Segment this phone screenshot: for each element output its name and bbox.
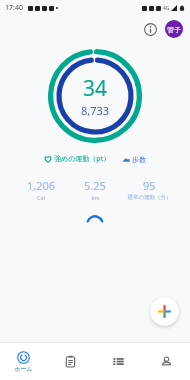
button[interactable]: 歩数 [120, 153, 148, 166]
button[interactable]: 1,206 [14, 178, 68, 201]
staticText: 8,733 [81, 103, 110, 118]
staticText: 4G [163, 5, 170, 12]
button[interactable]: Tab [142, 343, 190, 380]
staticText: 5.25 [84, 178, 106, 193]
button[interactable]: Account [165, 20, 183, 38]
button[interactable]: Add [150, 297, 179, 326]
staticText: ホーム [14, 365, 33, 373]
button[interactable]: ホーム [0, 343, 47, 380]
button[interactable]: Info [139, 18, 161, 40]
staticText: 歩数 [132, 155, 146, 164]
staticText: 管子 [167, 25, 181, 34]
staticText: km [91, 194, 100, 201]
button[interactable]: 強めの運動（pt） [42, 152, 113, 166]
staticText: 通常の運動（分） [127, 194, 172, 201]
staticText: 17:40 [5, 3, 23, 13]
button[interactable]: 95 [122, 178, 176, 201]
staticText: 強めの運動（pt） [54, 154, 111, 164]
staticText: 95 [143, 178, 156, 193]
button[interactable]: Tab [94, 343, 142, 380]
staticText: 34 [83, 74, 108, 103]
staticText: Cal [37, 194, 45, 201]
button[interactable]: 5.25 [68, 178, 122, 201]
button[interactable]: Tab [47, 343, 94, 380]
staticText: 1,206 [27, 178, 56, 193]
